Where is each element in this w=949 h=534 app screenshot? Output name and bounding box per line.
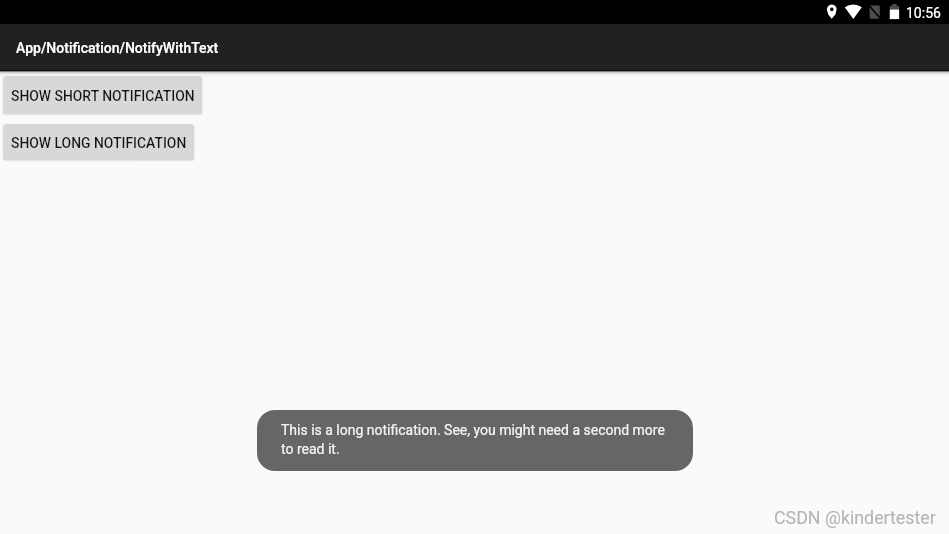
staticText: 10:56: [906, 5, 941, 21]
button[interactable]: Location: [826, 4, 838, 20]
staticText: SHOW LONG NOTIFICATION: [11, 135, 187, 151]
button[interactable]: SHOW SHORT NOTIFICATION: [3, 76, 202, 114]
staticText: This is a long notification. See, you mi…: [281, 422, 665, 458]
staticText: App/Notification/NotifyWithText: [16, 40, 219, 56]
staticText: CSDN @kindertester: [774, 507, 936, 528]
button[interactable]: App/Notification/NotifyWithText: [0, 24, 949, 70]
button[interactable]: Mobile signal off: [869, 5, 882, 21]
button[interactable]: Wi-Fi: [843, 3, 864, 21]
button[interactable]: Battery: [889, 3, 900, 20]
staticText: SHOW SHORT NOTIFICATION: [11, 88, 195, 104]
button[interactable]: SHOW LONG NOTIFICATION: [3, 124, 194, 160]
